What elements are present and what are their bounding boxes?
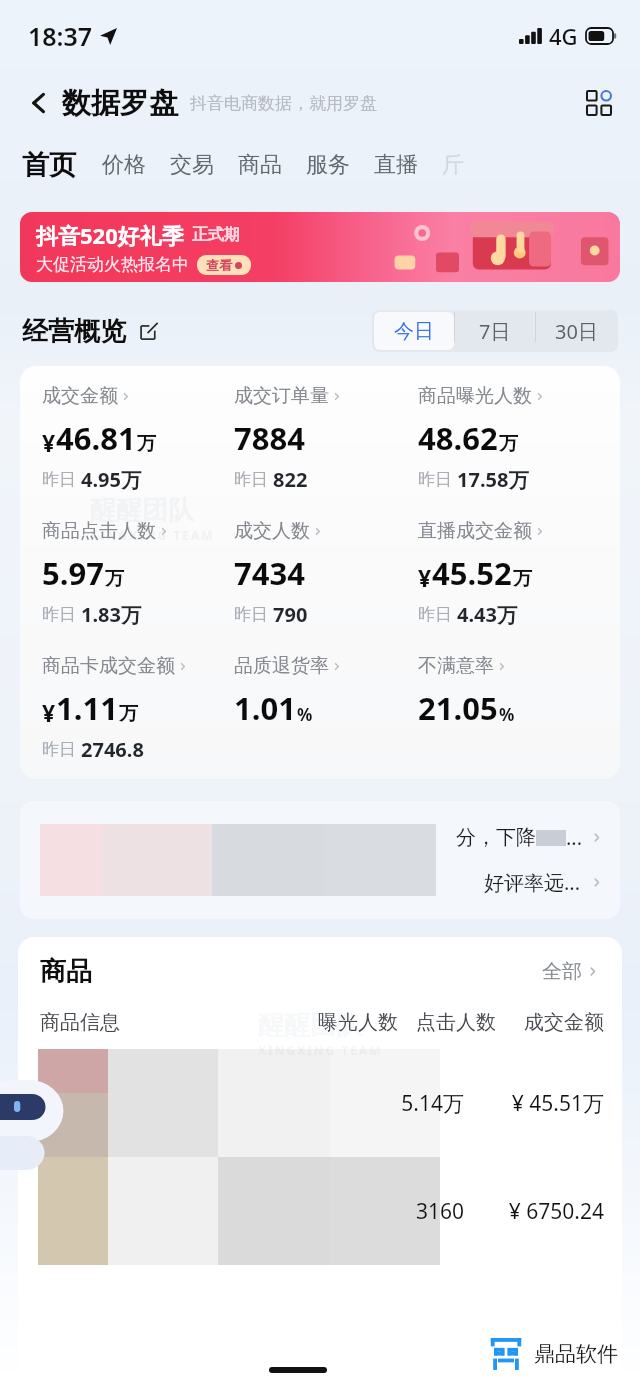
staticText: 4.43万 [457,601,517,628]
staticText: 正式期 [192,225,240,245]
staticText: ¥ [418,562,432,593]
staticText: ¥ [42,697,56,728]
staticText: 万 [119,702,138,726]
staticText: 822 [273,466,308,493]
staticText: 鼎品软件 [534,1341,618,1367]
button[interactable]: 成交金额 [42,384,234,493]
button[interactable]: 商品点击人数 [42,519,234,628]
staticText: 4.95万 [81,466,141,493]
button[interactable]: 直播 [374,151,442,179]
staticText: 昨日 [234,469,268,490]
staticText: 万 [513,567,532,591]
button[interactable]: 直播成交金额 [418,519,606,628]
staticText: ¥ [42,427,56,458]
button[interactable]: 斤 [442,151,464,179]
staticText: 抖音电商数据，就用罗盘 [190,93,377,114]
button[interactable]: 服务 [306,151,374,179]
staticText: % [297,703,313,726]
button[interactable]: 成交人数 [234,519,418,628]
staticText: 交易 [170,151,214,179]
staticText: 17.58万 [457,466,529,493]
button[interactable]: 不满意率 [418,654,606,760]
staticText: 查看 [206,257,232,273]
staticText: 成交人数 [234,519,310,543]
staticText: 1.01 [234,687,296,729]
staticText: 今日 [394,319,434,344]
staticText: 万 [499,432,518,456]
button[interactable]: 抖音520好礼季 [20,212,620,282]
button[interactable]: 30日 [536,312,616,350]
staticText: 直播 [374,151,418,179]
staticText: % [499,703,515,726]
staticText: 品质退货率 [234,654,329,678]
button[interactable]: 品质退货率 [234,654,418,760]
staticText: 商品信息 [40,1010,120,1035]
staticText: 价格 [102,151,146,179]
button[interactable]: 商品 [238,151,306,179]
staticText: 昨日 [42,469,76,490]
staticText: 万 [105,567,124,591]
button[interactable]: Edit [136,318,162,344]
staticText: 抖音520好礼季 [36,220,184,250]
button[interactable]: 7日 [455,312,535,350]
staticText: 18:37 [28,19,93,53]
staticText: 21.05 [418,687,498,729]
button[interactable]: 成交订单量 [234,384,418,493]
staticText: 点击人数 [410,1010,496,1035]
staticText: 成交金额 [42,384,118,408]
staticText: 790 [273,601,308,628]
staticText: 直播成交金额 [418,519,532,543]
staticText: XINGXING TEAM [90,527,215,543]
staticText: 商品卡成交金额 [42,654,175,678]
staticText: 好评率远... [484,869,581,896]
staticText: 数据罗盘 [62,85,178,122]
staticText: 7日 [479,318,511,345]
button[interactable]: 3160 [18,1157,622,1265]
staticText: 45.52 [432,552,512,594]
staticText: 1.83万 [81,601,141,628]
staticText: 昨日 [418,469,452,490]
button[interactable]: 交易 [170,151,238,179]
staticText: 昨日 [234,604,268,625]
staticText: 斤 [442,151,464,179]
staticText: 分，下降 [456,825,536,850]
staticText: ... [566,824,583,851]
staticText: 48.62 [418,417,498,459]
button[interactable]: 商品曝光人数 [418,384,606,493]
staticText: 5.14万 [354,1089,464,1118]
staticText: 服务 [306,151,350,179]
staticText: 3160 [354,1197,464,1226]
staticText: 商品点击人数 [42,519,156,543]
staticText: 醒醒团队 [258,1009,362,1042]
staticText: 5.97 [42,552,104,594]
button[interactable]: 5.14万 [18,1049,622,1157]
staticText: 46.81 [56,417,136,459]
button[interactable]: 首页 [22,148,102,182]
staticText: 成交订单量 [234,384,329,408]
staticText: 全部 [542,959,582,984]
staticText: 7434 [234,552,305,594]
staticText: ¥ 45.51万 [474,1089,604,1118]
button[interactable]: Back [22,86,56,120]
staticText: ¥ 6750.24 [474,1197,604,1226]
staticText: 不满意率 [418,654,494,678]
button[interactable]: 今日 [374,312,454,350]
staticText: 成交金额 [508,1010,604,1035]
staticText: 1.11 [56,687,118,729]
button[interactable]: 价格 [102,151,170,179]
staticText: 昨日 [42,739,76,760]
staticText: XINGXING TEAM [258,1042,383,1058]
button[interactable]: 商品卡成交金额 [42,654,234,763]
staticText: 曝光人数 [302,1010,398,1035]
staticText: 昨日 [418,604,452,625]
staticText: 7884 [234,417,305,459]
staticText: 万 [137,432,156,456]
staticText: 商品曝光人数 [418,384,532,408]
button[interactable]: Apps [580,84,618,122]
staticText: 4G [549,21,578,51]
button[interactable]: 全部 [542,959,600,984]
staticText: 30日 [555,318,598,345]
staticText: 大促活动火热报名中 [36,254,189,275]
staticText: 商品 [238,151,282,179]
button[interactable]: 分，下降 [20,801,620,919]
